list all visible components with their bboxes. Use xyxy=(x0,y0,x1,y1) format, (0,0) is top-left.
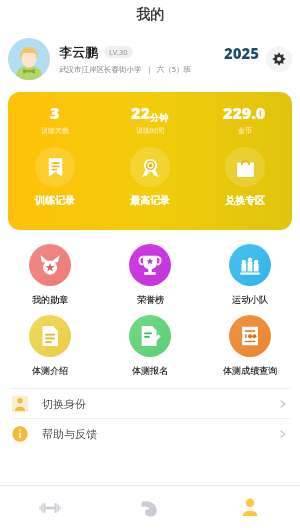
button[interactable]: Settings xyxy=(266,46,292,72)
staticText: 229.0 xyxy=(223,102,266,124)
staticText: 训练时间 xyxy=(136,126,164,135)
button[interactable]: 李云鹏 xyxy=(0,30,300,88)
staticText: 体测报名 xyxy=(132,365,168,376)
staticText: 2025 xyxy=(224,43,260,63)
button[interactable]: Profile xyxy=(200,486,300,530)
button[interactable]: 体测报名 xyxy=(100,315,200,376)
staticText: 最高记录 xyxy=(130,194,170,207)
staticText: 训练记录 xyxy=(35,194,75,207)
button[interactable]: 我的勋章 xyxy=(0,244,100,305)
staticText: 3 xyxy=(50,102,60,124)
button[interactable]: 切换身份 xyxy=(0,389,300,418)
staticText: 体测介绍 xyxy=(32,365,68,376)
button[interactable]: 最高记录 xyxy=(102,147,197,207)
button[interactable]: 体测介绍 xyxy=(0,315,100,376)
button[interactable]: Training xyxy=(100,486,200,530)
staticText: 我的勋章 xyxy=(32,294,68,305)
staticText: 分钟 xyxy=(150,112,168,123)
staticText: LV.30 xyxy=(109,47,128,57)
button[interactable]: 训练记录 xyxy=(8,147,102,207)
button[interactable]: Workout xyxy=(0,486,100,530)
button[interactable]: 帮助与反馈 xyxy=(0,419,300,448)
staticText: 我的 xyxy=(136,6,164,24)
staticText: 体测成绩查询 xyxy=(223,365,277,376)
button[interactable]: 荣誉榜 xyxy=(100,244,200,305)
staticText: 22 xyxy=(131,102,150,124)
button[interactable]: 兑换专区 xyxy=(197,147,292,207)
staticText: 金币 xyxy=(238,126,252,135)
staticText: 切换身份 xyxy=(42,397,86,411)
button[interactable]: 体测成绩查询 xyxy=(200,315,300,376)
staticText: 运动小队 xyxy=(232,294,268,305)
staticText: 帮助与反馈 xyxy=(42,427,97,441)
staticText: 李云鹏 xyxy=(59,44,98,60)
staticText: 训练天数 xyxy=(41,126,69,135)
staticText: 兑换专区 xyxy=(225,194,265,207)
button[interactable]: 运动小队 xyxy=(200,244,300,305)
staticText: 武汉市江岸区长春街小学 ｜ 六（5）班 xyxy=(59,64,191,74)
staticText: 荣誉榜 xyxy=(137,294,164,305)
